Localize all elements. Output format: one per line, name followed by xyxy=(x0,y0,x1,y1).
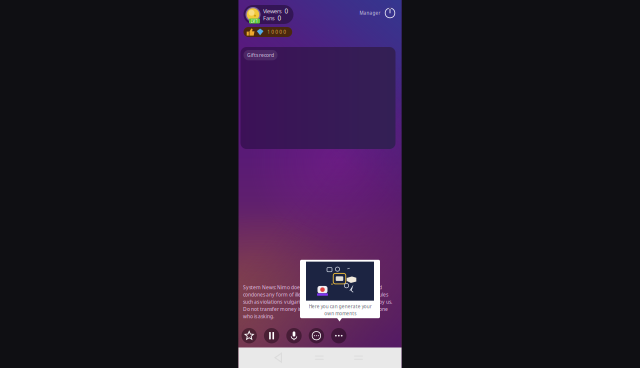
staticText: Manager xyxy=(359,10,380,16)
staticText: 0 xyxy=(277,14,281,22)
button[interactable]: End stream xyxy=(384,7,395,18)
staticText: 0 xyxy=(284,7,288,15)
staticText: Fans xyxy=(263,14,275,22)
button[interactable]: LV1 xyxy=(243,5,293,24)
staticText: Here you can generate your own moments xyxy=(308,303,371,316)
button[interactable]: Favourite xyxy=(241,328,257,343)
button[interactable]: Manager xyxy=(359,7,380,19)
button[interactable]: More xyxy=(331,328,346,343)
button[interactable]: Gifts record xyxy=(243,50,277,60)
staticText: System News: Nimo does not support illeg… xyxy=(243,284,392,320)
staticText: Gifts record xyxy=(247,52,274,58)
button[interactable]: 1 0 0 0 0 xyxy=(243,27,292,37)
staticText: LV1 xyxy=(250,18,258,24)
button[interactable]: Chat xyxy=(309,328,324,343)
button[interactable]: Pause xyxy=(264,328,279,343)
button[interactable]: Microphone xyxy=(286,328,302,343)
button[interactable]: Back xyxy=(270,350,286,366)
staticText: Viewers xyxy=(263,7,282,15)
staticText: 1 0 0 0 0 xyxy=(267,29,286,35)
